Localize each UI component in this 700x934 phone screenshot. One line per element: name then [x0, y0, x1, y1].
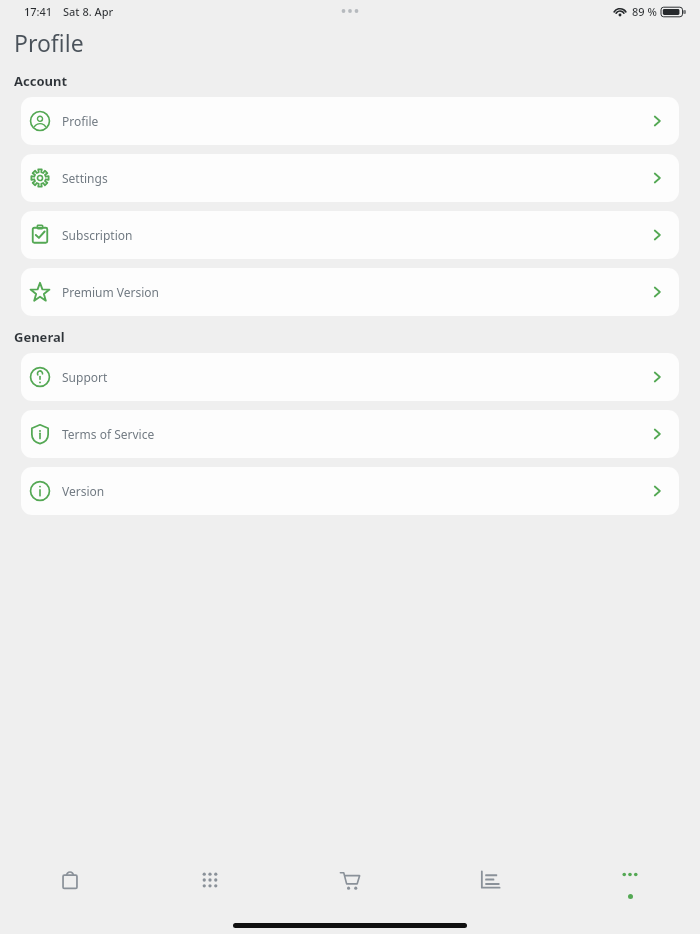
staticText: Settings: [62, 170, 108, 186]
staticText: General: [14, 328, 65, 346]
staticText: Sat 8. Apr: [63, 4, 114, 19]
button[interactable]: Cart: [280, 850, 420, 910]
button[interactable]: Reports: [420, 850, 560, 910]
button[interactable]: Terms of Service: [21, 410, 679, 458]
staticText: 17:41: [24, 4, 53, 19]
staticText: Profile: [14, 27, 84, 58]
button[interactable]: Profile: [21, 97, 679, 145]
staticText: Profile: [62, 113, 99, 129]
button[interactable]: Categories: [140, 850, 280, 910]
button[interactable]: Subscription: [21, 211, 679, 259]
staticText: Subscription: [62, 227, 133, 243]
staticText: Account: [14, 72, 68, 90]
staticText: Version: [62, 483, 105, 499]
staticText: 89 %: [632, 4, 657, 19]
button[interactable]: Shop: [0, 850, 140, 910]
button[interactable]: Premium Version: [21, 268, 679, 316]
button[interactable]: More: [560, 850, 700, 910]
staticText: Terms of Service: [62, 426, 155, 442]
staticText: Support: [62, 369, 108, 385]
button[interactable]: Settings: [21, 154, 679, 202]
button[interactable]: Support: [21, 353, 679, 401]
button[interactable]: Version: [21, 467, 679, 515]
staticText: Premium Version: [62, 284, 160, 300]
